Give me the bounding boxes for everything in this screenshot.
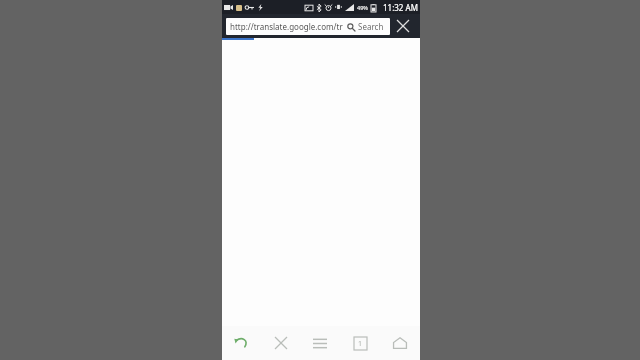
staticText: http://translate.google.com/tr (230, 21, 343, 32)
staticText: 1 (358, 339, 363, 349)
button[interactable]: Back (222, 326, 261, 360)
button[interactable]: http://translate.google.com/tr (226, 18, 390, 35)
button[interactable]: Close (390, 14, 416, 38)
button[interactable]: Stop (261, 326, 300, 360)
button[interactable]: Home (380, 326, 420, 360)
staticText: Search (358, 21, 384, 32)
button[interactable]: Tabs (340, 326, 380, 360)
staticText: 11:32 AM (383, 2, 418, 13)
staticText: 49% (357, 4, 368, 11)
button[interactable]: Menu (300, 326, 340, 360)
